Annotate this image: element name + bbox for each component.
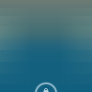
- button[interactable]: Locked: [36, 83, 56, 92]
